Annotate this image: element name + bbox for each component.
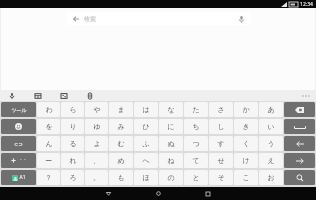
button[interactable]: と: [184, 170, 208, 185]
button[interactable]: か: [234, 102, 258, 117]
button[interactable]: Clipboard: [33, 91, 43, 101]
button[interactable]: わ: [37, 102, 60, 117]
button[interactable]: ね: [159, 153, 183, 168]
button[interactable]: Back: [91, 187, 125, 200]
button[interactable]: も: [109, 170, 133, 185]
button[interactable]: Voice input: [7, 91, 17, 101]
staticText: A1: [19, 174, 26, 181]
button[interactable]: あ: [259, 102, 283, 117]
button[interactable]: つ: [184, 136, 208, 151]
staticText: 検索: [84, 15, 96, 23]
button[interactable]: け: [234, 153, 258, 168]
button[interactable]: さ: [209, 102, 233, 117]
button[interactable]: の: [159, 170, 183, 185]
button[interactable]: や: [85, 102, 108, 117]
button[interactable]: れ: [61, 153, 84, 168]
staticText: す: [217, 139, 225, 148]
button[interactable]: Voice search: [236, 14, 246, 24]
button[interactable]: Move cursor right: [284, 153, 315, 168]
staticText: ね: [167, 156, 175, 165]
staticText: う: [267, 139, 275, 148]
button[interactable]: せ: [209, 153, 233, 168]
staticText: 、: [93, 156, 100, 165]
button[interactable]: ひ: [134, 119, 158, 134]
staticText: 12:34: [300, 1, 313, 8]
button[interactable]: む: [109, 136, 133, 151]
button[interactable]: る: [61, 136, 84, 151]
staticText: あ: [13, 176, 18, 181]
button[interactable]: ゆ: [85, 119, 108, 134]
button[interactable]: ま: [109, 102, 133, 117]
staticText: の: [167, 173, 175, 182]
button[interactable]: ふ: [134, 136, 158, 151]
staticText: ふ: [142, 139, 150, 148]
staticText: け: [242, 156, 250, 165]
button[interactable]: う: [259, 136, 283, 151]
button[interactable]: し: [209, 119, 233, 134]
staticText: を: [45, 122, 53, 131]
staticText: な: [167, 105, 175, 114]
button[interactable]: ろ: [61, 170, 84, 185]
button[interactable]: す: [209, 136, 233, 151]
button[interactable]: き: [234, 119, 258, 134]
staticText: る: [69, 139, 77, 148]
button[interactable]: Emoji: [59, 91, 69, 101]
button[interactable]: を: [37, 119, 60, 134]
button[interactable]: て: [184, 153, 208, 168]
button[interactable]: い: [259, 119, 283, 134]
button[interactable]: Backspace: [284, 102, 315, 117]
staticText: や: [93, 105, 101, 114]
staticText: い: [267, 122, 275, 131]
staticText: え: [267, 156, 275, 165]
staticText: ま: [117, 105, 125, 114]
button[interactable]: Back: [71, 14, 80, 23]
staticText: り: [69, 122, 77, 131]
button[interactable]: Back: [66, 12, 250, 25]
button[interactable]: な: [159, 102, 183, 117]
button[interactable]: へ: [134, 153, 158, 168]
button[interactable]: Emoji: [1, 119, 36, 134]
button[interactable]: は: [134, 102, 158, 117]
staticText: め: [117, 156, 125, 165]
button[interactable]: ち: [184, 119, 208, 134]
button[interactable]: ら: [61, 102, 84, 117]
staticText: し: [217, 122, 225, 131]
button[interactable]: ん: [37, 136, 60, 151]
staticText: に: [167, 122, 175, 131]
button[interactable]: え: [259, 153, 283, 168]
button[interactable]: Space: [284, 119, 315, 134]
button[interactable]: ツール: [1, 102, 36, 117]
button[interactable]: Move cursor left: [284, 136, 315, 151]
button[interactable]: Home: [141, 187, 175, 200]
button[interactable]: よ: [85, 136, 108, 151]
button[interactable]: Sticker: [85, 91, 95, 101]
button[interactable]: ？: [37, 170, 60, 185]
button[interactable]: そ: [209, 170, 233, 185]
button[interactable]: ー: [37, 153, 60, 168]
button[interactable]: 。: [85, 170, 108, 185]
button[interactable]: 、: [85, 153, 108, 168]
staticText: こ: [242, 173, 250, 182]
button[interactable]: ぬ: [159, 136, 183, 151]
button[interactable]: More options: [301, 91, 311, 101]
staticText: 。: [93, 173, 100, 182]
staticText: も: [117, 173, 125, 182]
button[interactable]: た: [184, 102, 208, 117]
button[interactable]: Dakuten: [1, 153, 36, 168]
button[interactable]: Search: [284, 170, 315, 185]
staticText: ぬ: [167, 139, 175, 148]
button[interactable]: く: [234, 136, 258, 151]
button[interactable]: め: [109, 153, 133, 168]
button[interactable]: Undo: [1, 136, 36, 151]
button[interactable]: Recent apps: [191, 187, 225, 200]
staticText: く: [242, 139, 250, 148]
button[interactable]: み: [109, 119, 133, 134]
staticText: き: [242, 122, 250, 131]
staticText: ゆ: [93, 122, 101, 131]
button[interactable]: ほ: [134, 170, 158, 185]
button[interactable]: り: [61, 119, 84, 134]
button[interactable]: こ: [234, 170, 258, 185]
button[interactable]: お: [259, 170, 283, 185]
button[interactable]: あ: [1, 170, 36, 185]
button[interactable]: に: [159, 119, 183, 134]
